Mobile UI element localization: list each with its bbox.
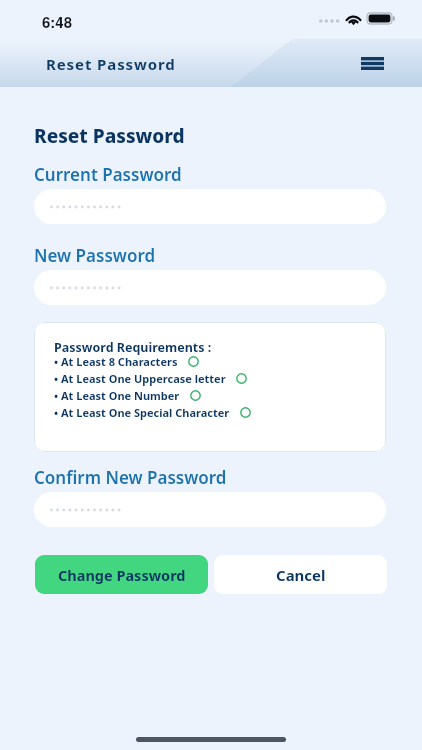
button[interactable]: Open navigation menu bbox=[352, 45, 393, 81]
staticText: • At Least One Special Character bbox=[54, 405, 230, 420]
button[interactable]: Password input bbox=[34, 492, 386, 527]
staticText: • At Least One Number bbox=[54, 388, 180, 403]
staticText: Current Password bbox=[34, 163, 182, 186]
staticText: Password Requirements : bbox=[54, 339, 212, 356]
staticText: New Password bbox=[34, 244, 156, 267]
button[interactable]: Password input bbox=[34, 270, 386, 305]
staticText: • At Least One Uppercase letter bbox=[54, 371, 226, 386]
button[interactable]: Cancel bbox=[214, 555, 387, 594]
staticText: 6:48 bbox=[42, 11, 73, 32]
staticText: Cancel bbox=[276, 565, 326, 585]
staticText: • At Least 8 Characters bbox=[54, 354, 178, 369]
staticText: Confirm New Password bbox=[34, 466, 227, 489]
button[interactable]: Password input bbox=[34, 189, 386, 224]
staticText: Reset Password bbox=[34, 123, 185, 149]
button[interactable]: Change Password bbox=[35, 555, 208, 594]
staticText: Reset Password bbox=[46, 54, 176, 74]
staticText: Change Password bbox=[58, 565, 186, 585]
